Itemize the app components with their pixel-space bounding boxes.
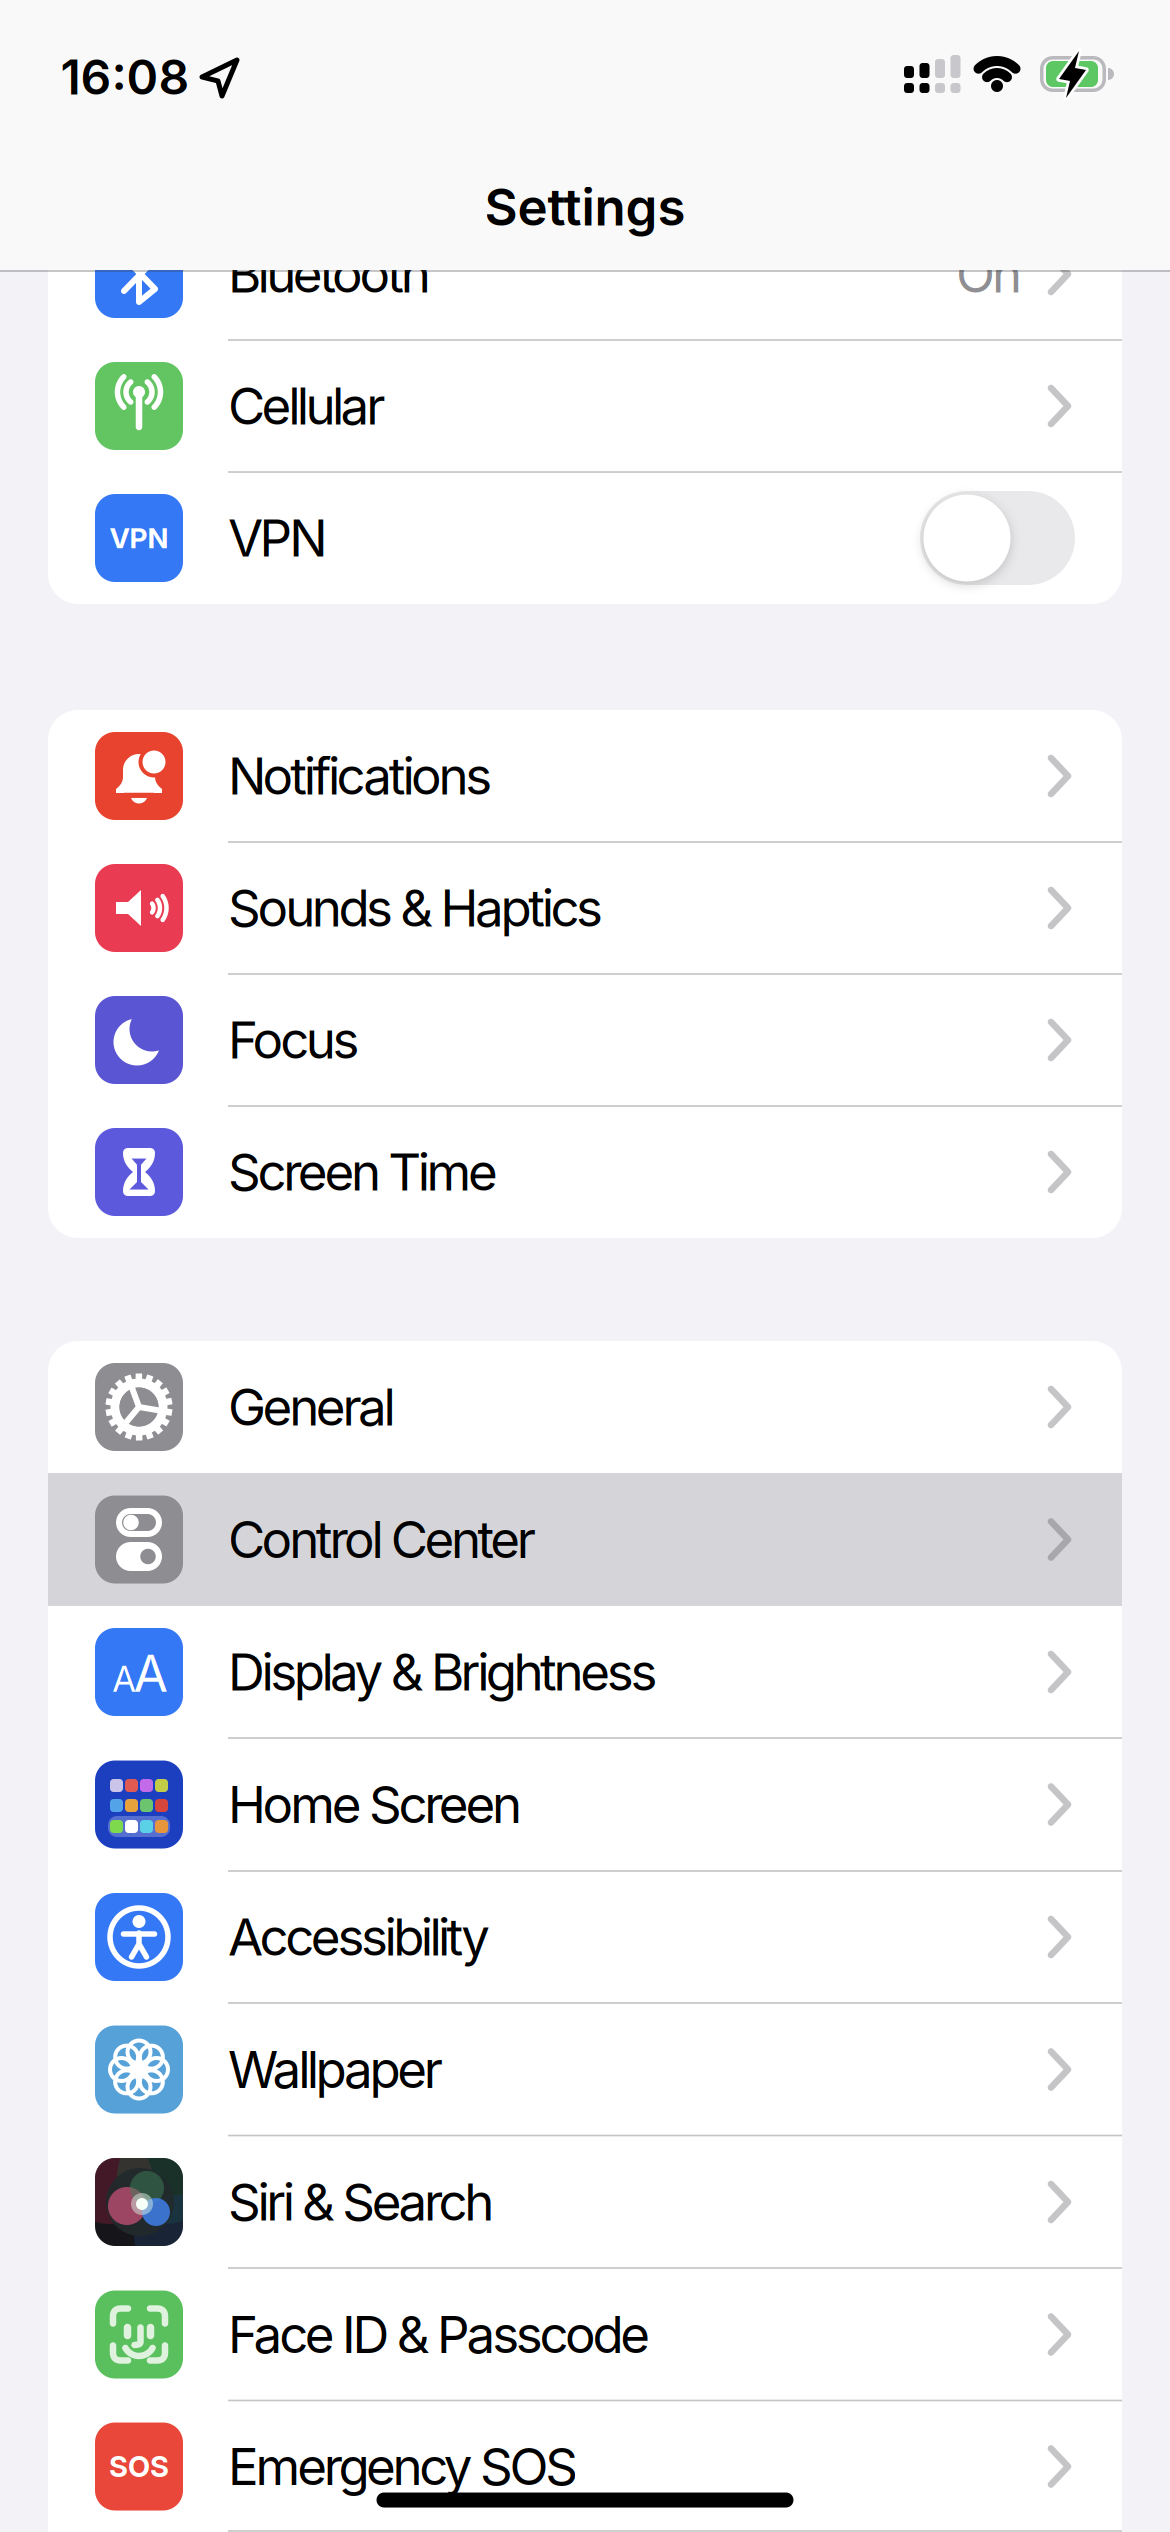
staticText: Control Center xyxy=(228,1509,536,1570)
button[interactable]: Screen Time xyxy=(48,1106,1122,1238)
button[interactable]: SOS xyxy=(48,2400,1122,2532)
staticText: Accessibility xyxy=(228,1906,490,1968)
button[interactable]: Accessibility xyxy=(48,1871,1122,2003)
staticText: Wallpaper xyxy=(228,2039,443,2100)
button[interactable]: Control Center xyxy=(48,1473,1122,1605)
button[interactable]: Focus xyxy=(48,974,1122,1106)
button[interactable]: VPN xyxy=(920,491,1075,585)
staticText: A xyxy=(112,1658,135,1700)
staticText: SOS xyxy=(109,2449,169,2484)
staticText: On xyxy=(956,243,1022,305)
staticText: General xyxy=(228,1376,396,1438)
staticText: Face ID & Passcode xyxy=(228,2304,650,2365)
staticText: Siri & Search xyxy=(228,2171,494,2233)
button[interactable]: Sounds & Haptics xyxy=(48,842,1122,974)
button[interactable]: A xyxy=(48,1606,1122,1738)
staticText: Display & Brightness xyxy=(228,1641,657,1703)
staticText: VPN xyxy=(109,521,168,555)
button[interactable]: General xyxy=(48,1341,1122,1473)
button[interactable]: Notifications xyxy=(48,710,1122,842)
staticText: Emergency SOS xyxy=(228,2436,578,2497)
staticText: A xyxy=(133,1643,167,1704)
staticText: Home Screen xyxy=(228,1774,522,1835)
staticText: Bluetooth xyxy=(228,243,431,305)
button[interactable]: Face ID & Passcode xyxy=(48,2268,1122,2400)
button[interactable]: VPN xyxy=(48,472,1122,604)
button[interactable]: Home Screen xyxy=(48,1738,1122,1870)
staticText: Cellular xyxy=(228,375,385,437)
staticText: Screen Time xyxy=(228,1141,498,1203)
staticText: Notifications xyxy=(228,745,492,807)
staticText: VPN xyxy=(228,507,327,569)
staticText: Sounds & Haptics xyxy=(228,877,603,939)
button[interactable]: Wallpaper xyxy=(48,2003,1122,2135)
button[interactable]: Siri & Search xyxy=(48,2136,1122,2268)
button[interactable]: Cellular xyxy=(48,340,1122,472)
staticText: Focus xyxy=(228,1009,359,1071)
staticText: 16:08 xyxy=(60,48,189,106)
button[interactable]: Bluetooth xyxy=(48,208,1122,340)
staticText: Settings xyxy=(484,176,685,238)
